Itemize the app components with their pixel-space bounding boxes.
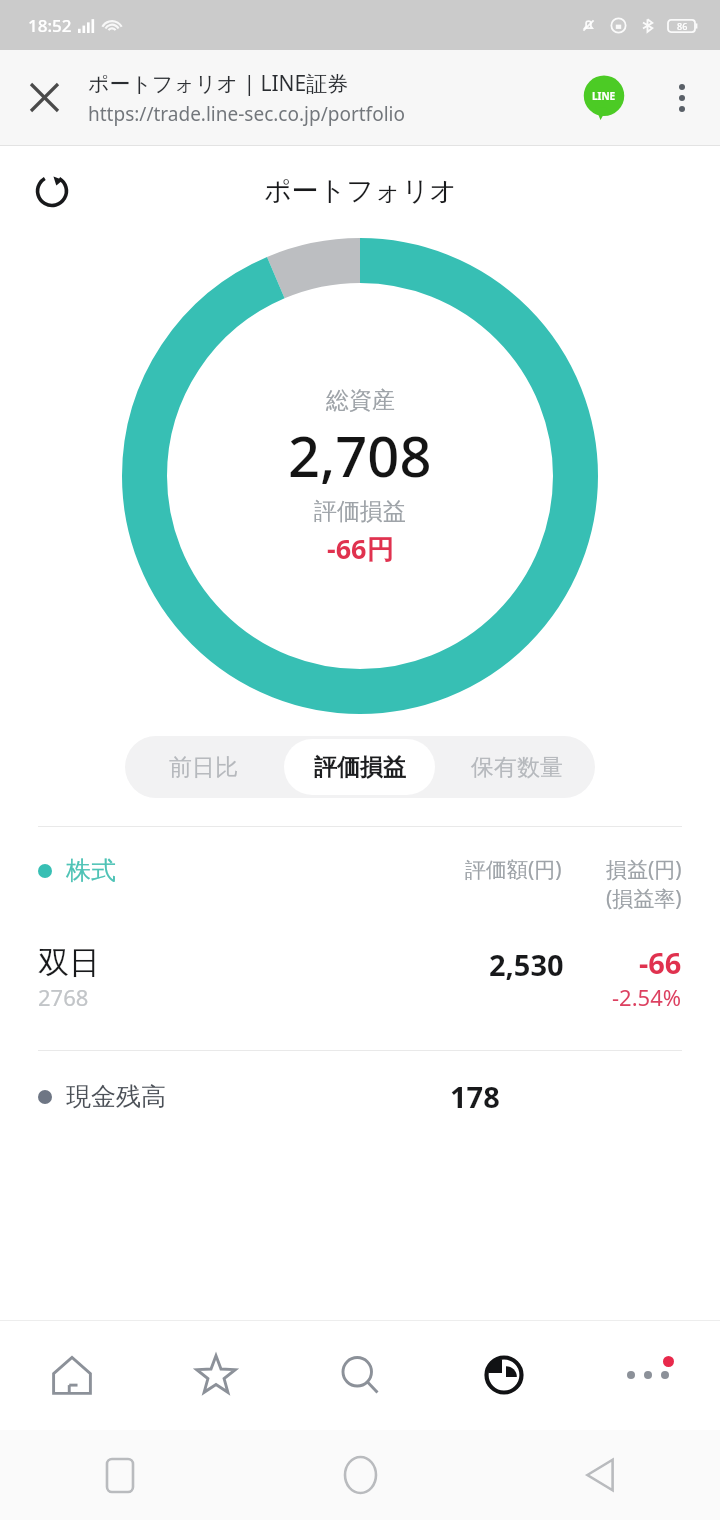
staticText: 現金残高 bbox=[66, 1081, 166, 1112]
button[interactable]: 現金残高 bbox=[38, 1077, 682, 1116]
button[interactable]: Recents bbox=[0, 1430, 240, 1520]
staticText: 保有数量 bbox=[471, 753, 563, 782]
button[interactable]: Close bbox=[0, 50, 88, 145]
staticText: LINE bbox=[592, 89, 616, 103]
staticText: 2768 bbox=[38, 982, 89, 1012]
button[interactable]: 前日比 bbox=[128, 739, 278, 795]
button[interactable]: Reload bbox=[22, 161, 82, 221]
button[interactable]: LINE bbox=[564, 58, 644, 138]
staticText: 178 bbox=[450, 1077, 500, 1116]
staticText: 前日比 bbox=[169, 753, 238, 782]
staticText: 株式 bbox=[66, 855, 116, 886]
staticText: 2,708 bbox=[288, 417, 432, 493]
staticText: (損益率) bbox=[606, 884, 682, 913]
button[interactable]: 株式 bbox=[38, 855, 682, 913]
staticText: -2.54% bbox=[612, 982, 682, 1012]
button[interactable]: Portfolio bbox=[432, 1320, 576, 1430]
staticText: https://trade.line-sec.co.jp/portfolio bbox=[88, 101, 405, 127]
staticText: ポートフォリオ | LINE証券 bbox=[88, 69, 349, 98]
button[interactable]: Back bbox=[480, 1430, 720, 1520]
staticText: -66円 bbox=[327, 530, 394, 567]
button[interactable]: 保有数量 bbox=[441, 739, 592, 795]
staticText: 双日 bbox=[38, 943, 100, 982]
staticText: 評価損益 bbox=[314, 753, 406, 782]
button[interactable]: Home bbox=[240, 1430, 480, 1520]
staticText: -66 bbox=[639, 943, 682, 982]
staticText: 18:52 bbox=[28, 14, 72, 37]
staticText: 総資産 bbox=[326, 386, 395, 415]
staticText: 損益(円) bbox=[606, 855, 682, 884]
button[interactable]: Home bbox=[0, 1320, 144, 1430]
staticText: ポートフォリオ bbox=[264, 174, 457, 208]
button[interactable]: 双日 bbox=[38, 943, 682, 1012]
button[interactable]: More bbox=[576, 1320, 720, 1430]
button[interactable]: Favorites bbox=[144, 1320, 288, 1430]
button[interactable]: Search bbox=[288, 1320, 432, 1430]
staticText: 86 bbox=[677, 20, 688, 32]
staticText: 2,530 bbox=[489, 945, 564, 984]
button[interactable]: More options bbox=[644, 50, 720, 145]
button[interactable]: 評価損益 bbox=[284, 739, 435, 795]
staticText: 評価額(円) bbox=[465, 855, 562, 884]
staticText: 評価損益 bbox=[314, 497, 406, 526]
